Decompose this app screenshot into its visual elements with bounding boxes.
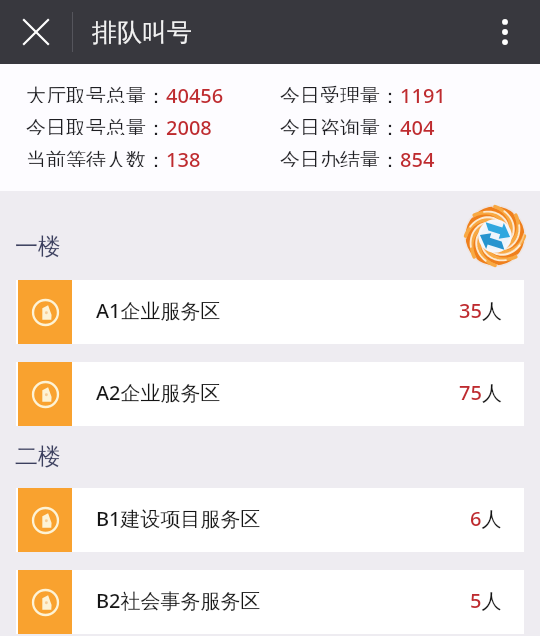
button[interactable]: A1企业服务区: [0, 280, 540, 344]
staticText: A1企业服务区: [96, 297, 221, 324]
staticText: 今日受理量：1191: [280, 82, 446, 103]
button[interactable]: Refresh: [460, 201, 530, 271]
staticText: B1建设项目服务区: [96, 505, 261, 532]
button[interactable]: B2社会事务服务区: [0, 570, 540, 634]
staticText: 今日咨询量：404: [280, 114, 435, 135]
staticText: 二楼: [15, 442, 61, 471]
staticText: 当前等待人数：138: [26, 146, 201, 167]
staticText: 大厅取号总量：40456: [26, 82, 224, 103]
staticText: 5人: [470, 587, 502, 614]
button[interactable]: A2企业服务区: [0, 362, 540, 426]
staticText: 6人: [470, 505, 502, 532]
staticText: A2企业服务区: [96, 379, 221, 406]
staticText: 今日取号总量：2008: [26, 114, 212, 135]
staticText: 今日办结量：854: [280, 146, 435, 167]
staticText: 排队叫号: [92, 17, 192, 48]
staticText: 35人: [459, 297, 502, 324]
staticText: 75人: [459, 379, 502, 406]
button[interactable]: More options: [470, 0, 540, 64]
button[interactable]: Close: [0, 0, 72, 64]
staticText: B2社会事务服务区: [96, 587, 261, 614]
staticText: 一楼: [15, 232, 61, 261]
button[interactable]: B1建设项目服务区: [0, 488, 540, 552]
